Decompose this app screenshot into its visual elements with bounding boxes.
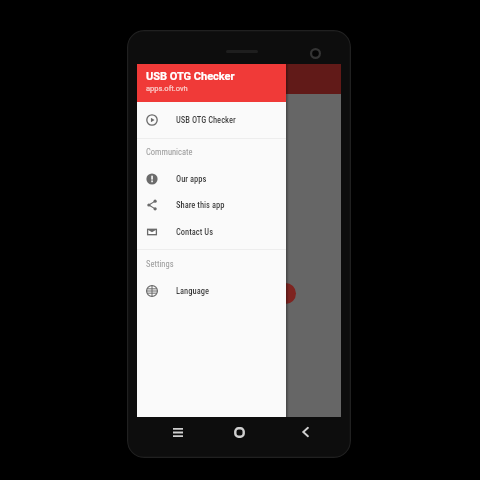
button[interactable]: Recent apps [168, 422, 188, 442]
button[interactable]: Back [295, 422, 315, 442]
button[interactable]: USB OTG Checker [137, 107, 286, 133]
staticText: Share this app [176, 200, 225, 210]
staticText: Communicate [146, 147, 193, 157]
staticText: Our apps [176, 174, 207, 184]
button[interactable]: Home [229, 422, 249, 442]
staticText: Settings [146, 259, 174, 269]
button[interactable]: USB OTG Checker [137, 64, 286, 102]
button[interactable]: Contact Us [137, 219, 286, 245]
button[interactable]: Share this app [137, 192, 286, 218]
button[interactable]: Close navigation drawer [137, 64, 341, 417]
staticText: Contact Us [176, 227, 214, 237]
staticText: USB OTG Checker [146, 70, 235, 83]
staticText: Language [176, 286, 209, 296]
button[interactable]: Language [137, 278, 286, 304]
button[interactable]: Our apps [137, 166, 286, 192]
staticText: USB OTG Checker [176, 115, 236, 125]
staticText: apps.oft.ovh [146, 84, 188, 93]
